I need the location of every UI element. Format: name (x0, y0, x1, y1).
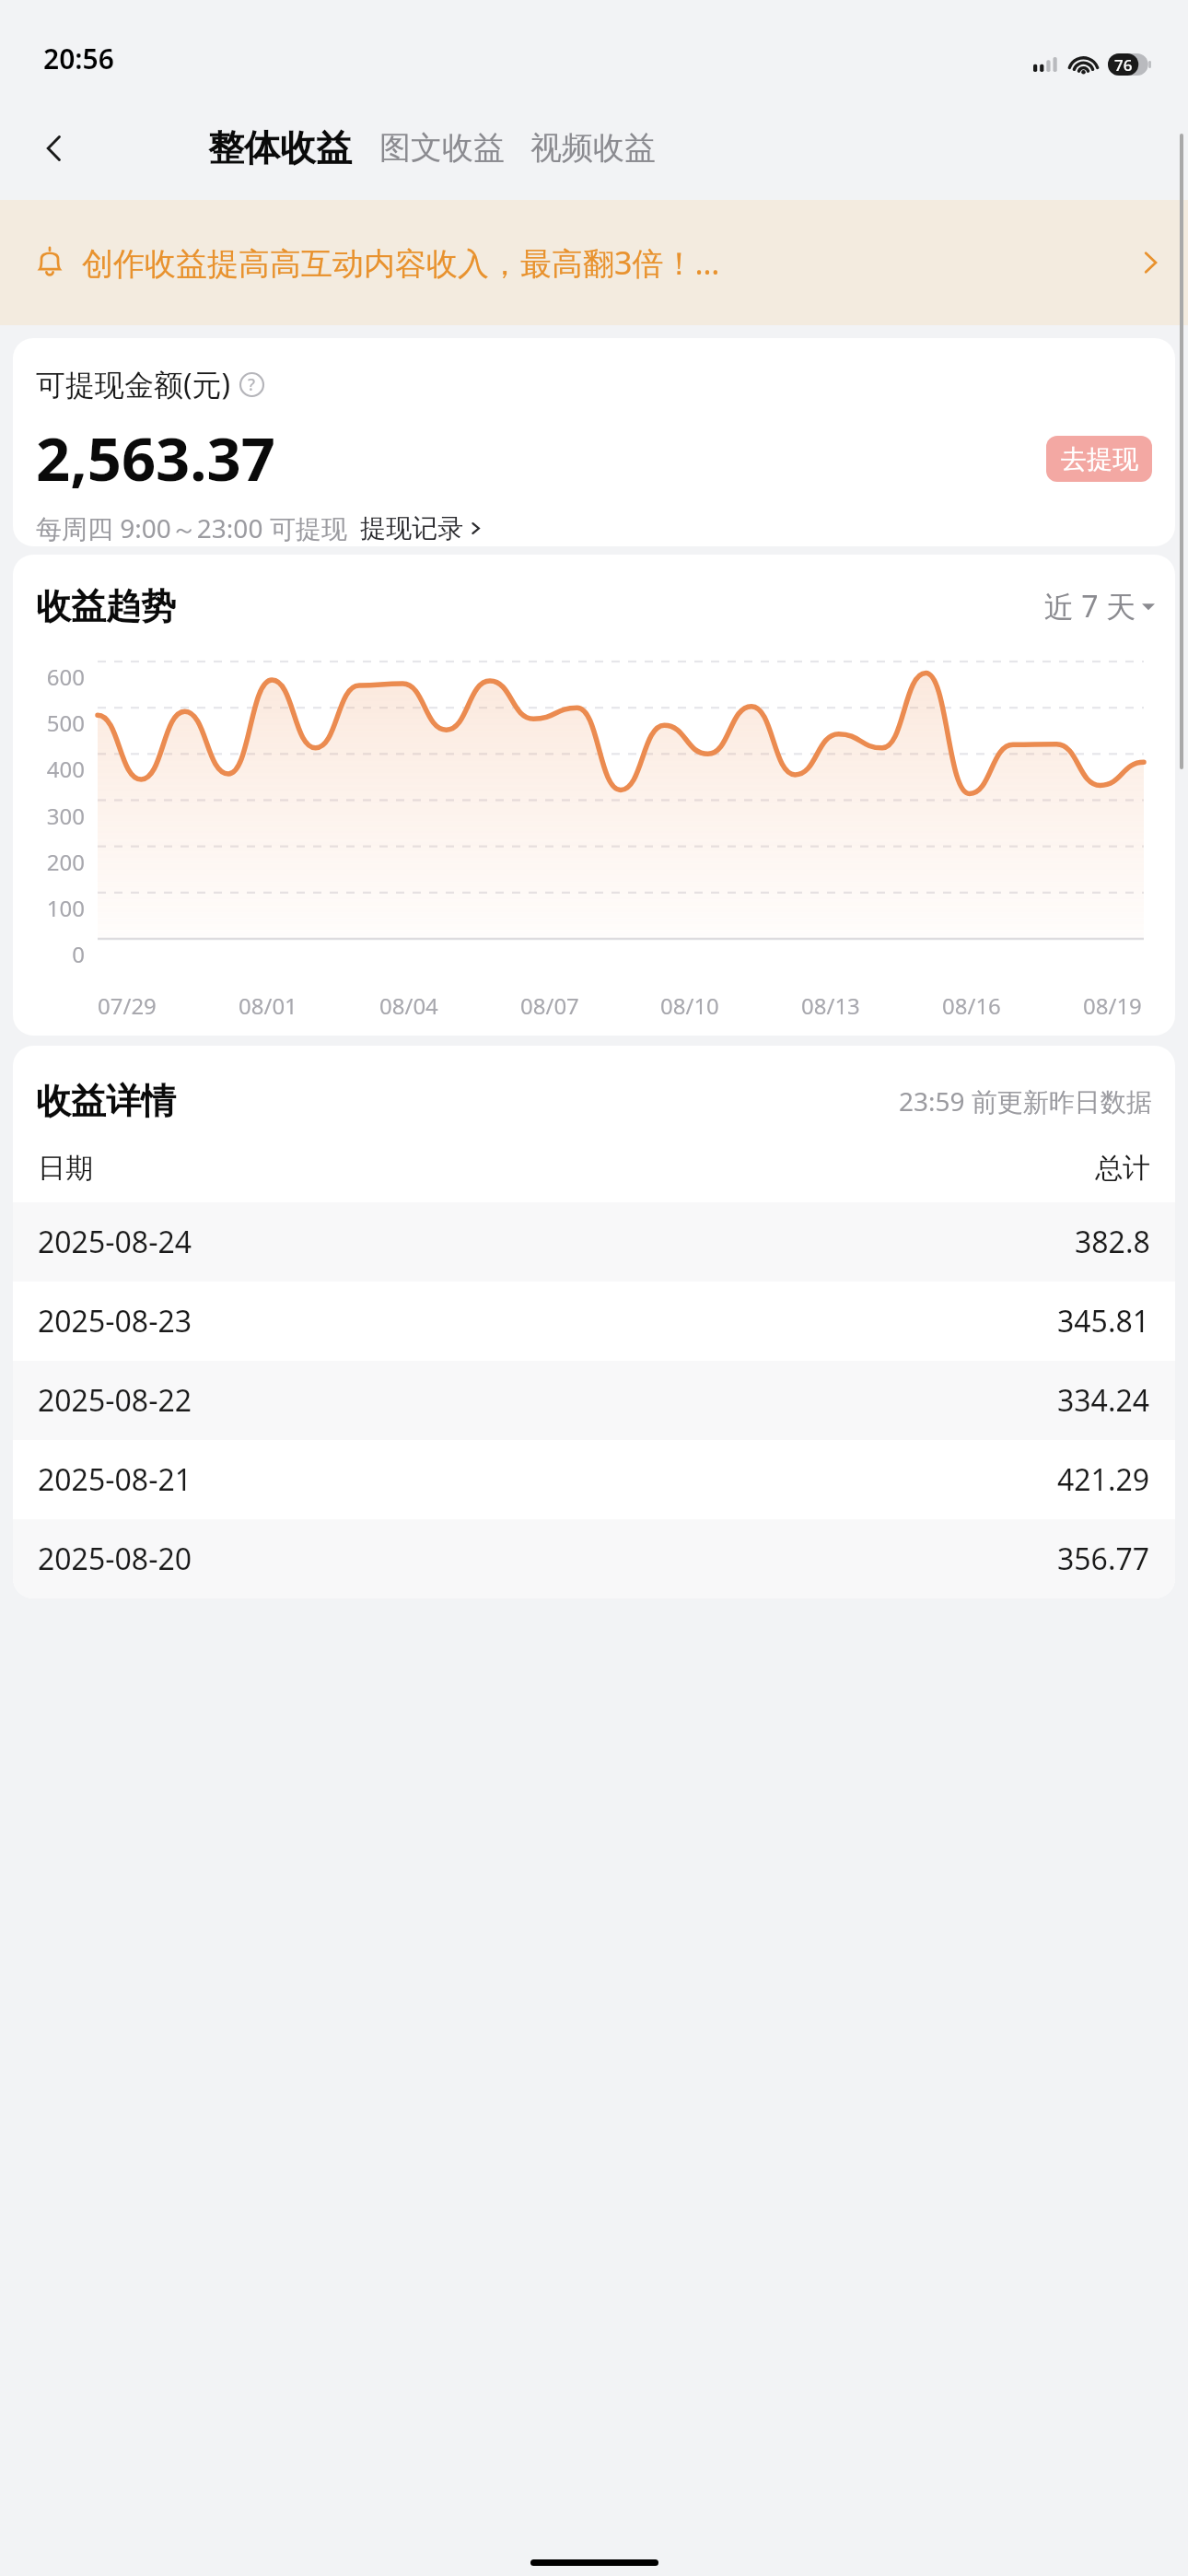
button[interactable]: 2025-08-24 (13, 1202, 1175, 1282)
button[interactable]: 视频收益 (530, 128, 656, 168)
staticText: 421.29 (1057, 1459, 1150, 1500)
staticText: 08/10 (660, 990, 719, 1021)
staticText: 2025-08-22 (38, 1380, 192, 1421)
button[interactable]: 提现记录 (360, 512, 483, 544)
staticText: 500 (33, 708, 85, 738)
staticText: 200 (33, 847, 85, 877)
button[interactable]: 创作收益提高高互动内容收入，最高翻3倍！… (0, 200, 1188, 325)
button[interactable]: 图文收益 (379, 128, 505, 168)
button[interactable]: 帮助 (239, 372, 264, 397)
staticText: 300 (33, 801, 85, 831)
staticText: 76 (1114, 54, 1133, 76)
staticText: 每周四 9:00～23:00 可提现 (36, 510, 347, 545)
staticText: 2,563.37 (36, 417, 275, 499)
staticText: 100 (33, 893, 85, 923)
staticText: 345.81 (1057, 1301, 1150, 1341)
staticText: 400 (33, 754, 85, 784)
button[interactable]: 2025-08-21 (13, 1440, 1175, 1519)
staticText: 08/04 (379, 990, 438, 1021)
staticText: 收益趋势 (36, 584, 176, 628)
staticText: 创作收益提高高互动内容收入，最高翻3倍！… (82, 241, 1131, 284)
button[interactable]: Back (26, 120, 83, 177)
staticText: 07/29 (98, 990, 157, 1021)
staticText: 提现记录 (360, 512, 463, 544)
staticText: 08/13 (801, 990, 860, 1021)
staticText: 382.8 (1075, 1222, 1150, 1262)
button[interactable]: 2025-08-22 (13, 1361, 1175, 1440)
button[interactable]: 2025-08-20 (13, 1519, 1175, 1598)
button[interactable]: 2025-08-23 (13, 1282, 1175, 1361)
staticText: 2025-08-24 (38, 1222, 192, 1262)
staticText: 可提现金额(元) (36, 364, 231, 404)
staticText: 08/16 (942, 990, 1001, 1021)
staticText: 0 (33, 939, 85, 969)
staticText: 总计 (1095, 1151, 1150, 1186)
staticText: 334.24 (1057, 1380, 1150, 1421)
button[interactable]: 近 7 天 (1044, 586, 1155, 626)
staticText: 08/07 (520, 990, 579, 1021)
staticText: 收益详情 (36, 1079, 176, 1123)
staticText: 20:56 (43, 40, 114, 77)
staticText: 08/01 (239, 990, 297, 1021)
staticText: 日期 (38, 1151, 93, 1186)
staticText: 356.77 (1057, 1539, 1150, 1579)
staticText: 08/19 (1083, 990, 1142, 1021)
button[interactable]: 整体收益 (208, 125, 352, 170)
staticText: 23:59 前更新昨日数据 (899, 1083, 1152, 1118)
staticText: 2025-08-23 (38, 1301, 192, 1341)
staticText: ? (248, 373, 256, 396)
staticText: 2025-08-21 (38, 1459, 192, 1500)
staticText: 2025-08-20 (38, 1539, 192, 1579)
staticText: 600 (33, 662, 85, 692)
button[interactable]: 去提现 (1046, 436, 1152, 482)
staticText: 近 7 天 (1044, 586, 1136, 626)
staticText: 去提现 (1061, 443, 1138, 475)
